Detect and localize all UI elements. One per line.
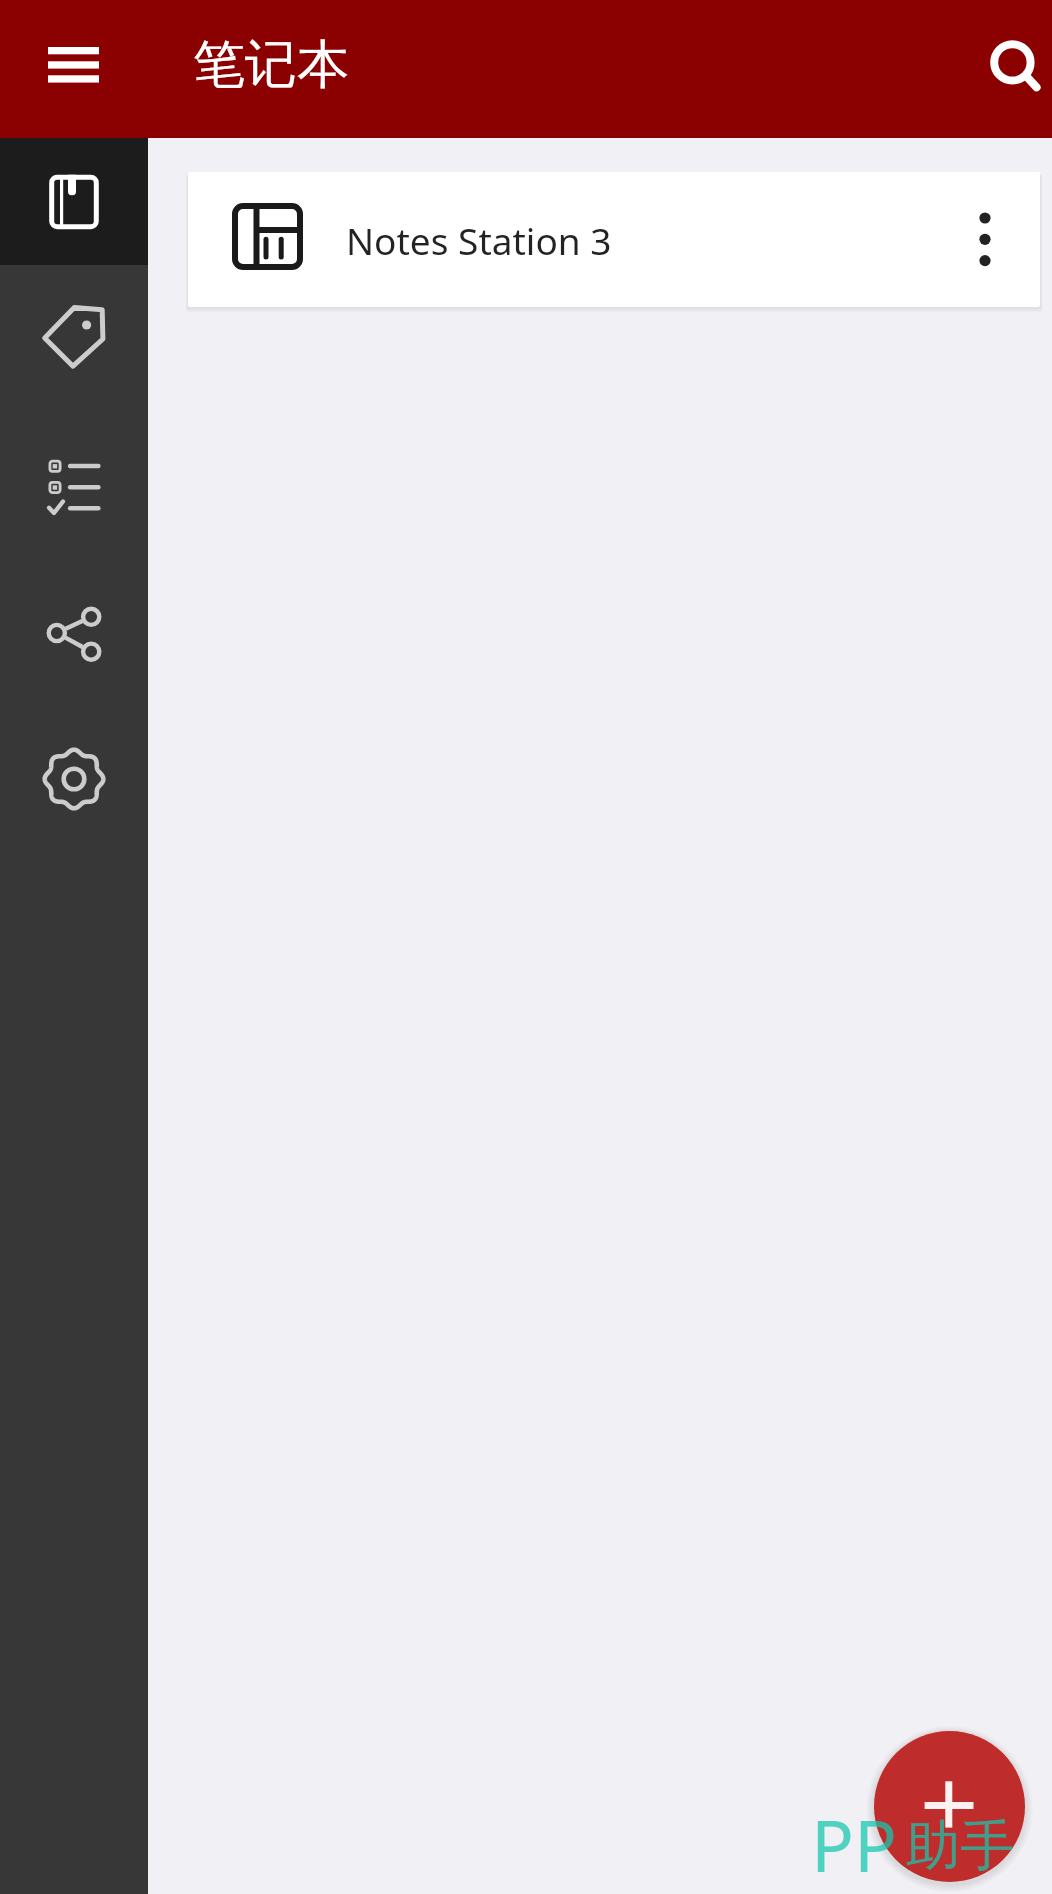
staticText: 笔记本 [193,32,349,98]
button[interactable]: Menu [20,0,126,138]
staticText: PP [811,1796,897,1893]
button[interactable]: Tags [0,292,148,382]
staticText: Notes Station 3 [346,215,612,265]
button[interactable]: Shared [0,589,148,679]
button[interactable]: Notes Station 3 [188,172,1040,307]
button[interactable]: Search [962,0,1052,138]
button[interactable]: Add note [874,1731,1025,1882]
button[interactable]: Settings [0,734,148,824]
button[interactable]: To do [0,442,148,532]
staticText: 助手 [906,1812,1014,1880]
button[interactable]: More options [930,172,1040,307]
button[interactable]: Notebooks [0,138,148,265]
